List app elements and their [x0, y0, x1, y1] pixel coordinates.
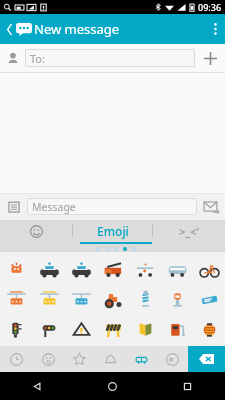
- button[interactable]: Emoji 18: [129, 314, 161, 344]
- button[interactable]: Emoji 0: [0, 254, 33, 284]
- button[interactable]: Emoji 20: [193, 314, 225, 344]
- button[interactable]: Recent: [0, 346, 32, 372]
- button[interactable]: Emoji 19: [161, 314, 193, 344]
- button[interactable]: Emoji 16: [65, 314, 97, 344]
- button[interactable]: Nature: [64, 346, 95, 372]
- button[interactable]: Emoji 12: [161, 284, 193, 314]
- button[interactable]: Attach: [7, 200, 21, 214]
- button[interactable]: Symbols: [157, 346, 188, 372]
- button[interactable]: Emoji 9: [65, 284, 97, 314]
- button[interactable]: Emoji 14: [0, 314, 33, 344]
- button[interactable]: Message: [27, 198, 197, 215]
- button[interactable]: Emoji 17: [97, 314, 129, 344]
- button[interactable]: Emoji 5: [161, 254, 193, 284]
- button[interactable]: More options: [206, 14, 225, 44]
- button[interactable]: To:: [25, 49, 195, 67]
- button[interactable]: Emoji 10: [97, 284, 129, 314]
- staticText: 09:36: [198, 1, 222, 13]
- button[interactable]: Objects: [95, 346, 126, 372]
- button[interactable]: Emoji 4: [129, 254, 161, 284]
- button[interactable]: Emoji 13: [193, 284, 225, 314]
- button[interactable]: Back: [0, 372, 75, 400]
- button[interactable]: Emoji 8: [33, 284, 65, 314]
- button[interactable]: Emoji 2: [65, 254, 97, 284]
- button[interactable]: Backspace: [188, 346, 225, 372]
- button[interactable]: Emoji 1: [33, 254, 65, 284]
- button[interactable]: Smileys: [32, 346, 64, 372]
- button[interactable]: Recent apps: [150, 372, 225, 400]
- staticText: Message: [32, 200, 76, 214]
- button[interactable]: >_<': [153, 220, 225, 242]
- button[interactable]: Travel: [126, 346, 157, 372]
- button[interactable]: Emoji 11: [129, 284, 161, 314]
- button[interactable]: Send: [197, 193, 225, 220]
- button[interactable]: Emoji 15: [33, 314, 65, 344]
- button[interactable]: Add recipient: [195, 44, 225, 72]
- button[interactable]: Home: [75, 372, 150, 400]
- button[interactable]: Emoji 3: [97, 254, 129, 284]
- staticText: To:: [30, 51, 45, 66]
- button[interactable]: Emoji 7: [0, 284, 33, 314]
- staticText: New message: [34, 20, 120, 38]
- staticText: >_<': [179, 224, 199, 239]
- button[interactable]: Smileys: [0, 220, 72, 242]
- staticText: Emoji: [97, 223, 129, 239]
- button[interactable]: Emoji 6: [193, 254, 225, 284]
- button[interactable]: Emoji: [73, 220, 152, 242]
- button[interactable]: Back: [4, 20, 35, 39]
